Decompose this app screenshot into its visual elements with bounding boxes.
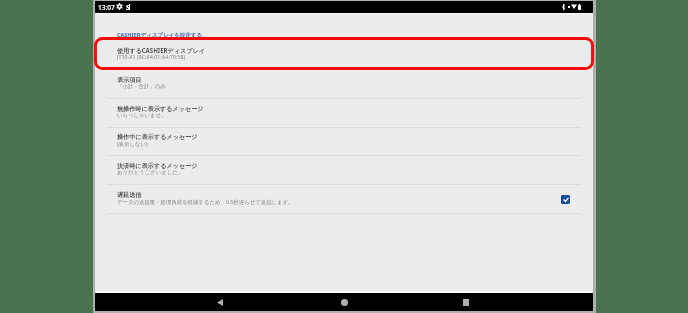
button[interactable]: 使用するCASHIERディスプレイ xyxy=(95,40,593,69)
staticText: ありがとうございました。 xyxy=(117,169,184,176)
button[interactable]: 決済時に表示するメッセージ xyxy=(95,156,593,185)
staticText: 使用するCASHIERディスプレイ xyxy=(117,46,206,54)
staticText: 操作中に表示するメッセージ xyxy=(117,133,198,141)
button[interactable]: Home xyxy=(329,293,359,311)
staticText: JT10-X1 (8C:84:01:A4:79:58) xyxy=(117,53,186,60)
staticText: 13:07 xyxy=(98,3,115,12)
staticText: (表示しない) xyxy=(117,140,148,147)
staticText: データの送信量・処理負荷を軽減するため、0.5秒遅らせて送信します。 xyxy=(117,198,294,205)
staticText: 「小計・合計」のみ xyxy=(117,83,166,90)
button[interactable]: Recent apps xyxy=(451,293,481,311)
button[interactable]: 表示項目 xyxy=(95,70,593,99)
button[interactable]: 操作中に表示するメッセージ xyxy=(95,127,593,156)
staticText: 決済時に表示するメッセージ xyxy=(117,162,198,170)
staticText: いらっしゃいませ。 xyxy=(117,112,167,119)
staticText: S xyxy=(126,3,130,13)
staticText: CASHIERディスプレイを設定する xyxy=(117,31,203,39)
button[interactable]: 遅延送信 xyxy=(95,185,593,214)
button[interactable]: Back xyxy=(205,293,235,311)
staticText: 無操作時に表示するメッセージ xyxy=(117,105,204,113)
button[interactable]: Enabled xyxy=(561,195,570,204)
button[interactable]: 無操作時に表示するメッセージ xyxy=(95,99,593,128)
staticText: 遅延送信 xyxy=(117,191,142,199)
staticText: 表示項目 xyxy=(117,76,142,84)
